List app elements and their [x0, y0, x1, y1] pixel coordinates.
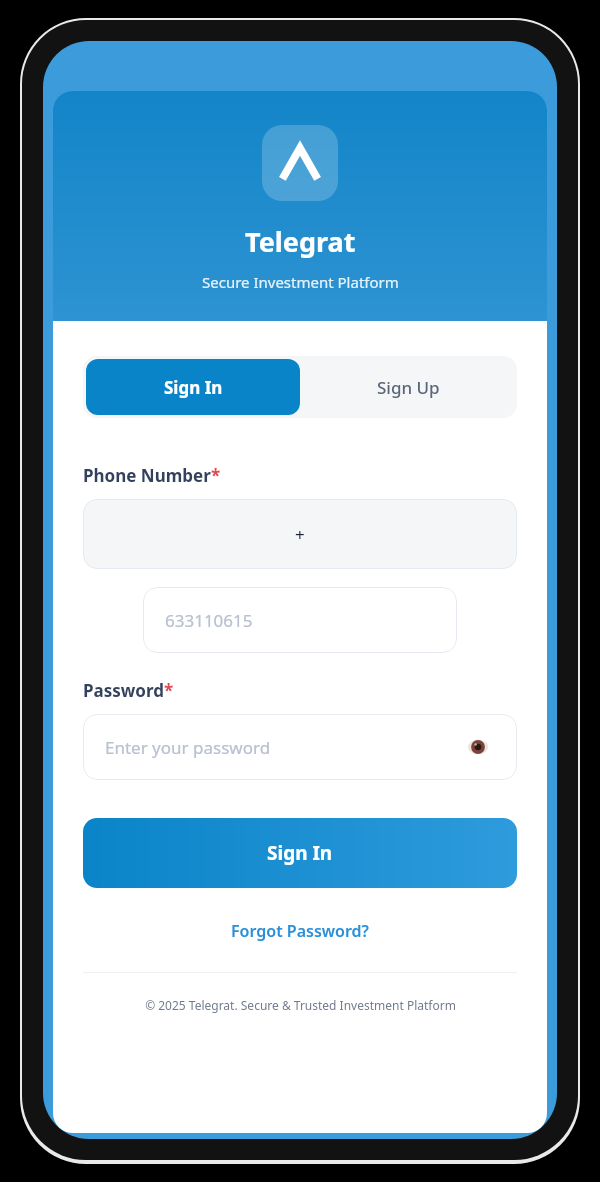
staticText: Password — [83, 679, 164, 702]
button[interactable]: Sign In — [86, 359, 300, 415]
staticText: * — [211, 464, 221, 487]
button[interactable]: Show password — [461, 730, 495, 764]
staticText: Secure Investment Platform — [202, 272, 399, 292]
staticText: 633110615 — [165, 609, 253, 632]
button[interactable]: 633110615 — [143, 587, 457, 653]
button[interactable]: Sign In — [83, 818, 517, 888]
staticText: * — [164, 679, 174, 702]
staticText: © 2025 Telegrat. Secure & Trusted Invest… — [145, 997, 456, 1013]
staticText: Sign In — [164, 376, 223, 399]
staticText: Enter your password — [105, 736, 271, 759]
button[interactable]: Forgot Password? — [225, 916, 375, 946]
button[interactable]: Sign Up — [300, 356, 517, 418]
staticText: Phone Number — [83, 464, 211, 487]
staticText: Sign In — [267, 840, 333, 866]
button[interactable]: + — [83, 499, 517, 569]
staticText: + — [295, 523, 305, 546]
staticText: Sign Up — [377, 376, 440, 399]
button[interactable]: Enter your password — [83, 714, 517, 780]
staticText: Forgot Password? — [231, 920, 369, 942]
staticText: Telegrat — [245, 223, 356, 260]
